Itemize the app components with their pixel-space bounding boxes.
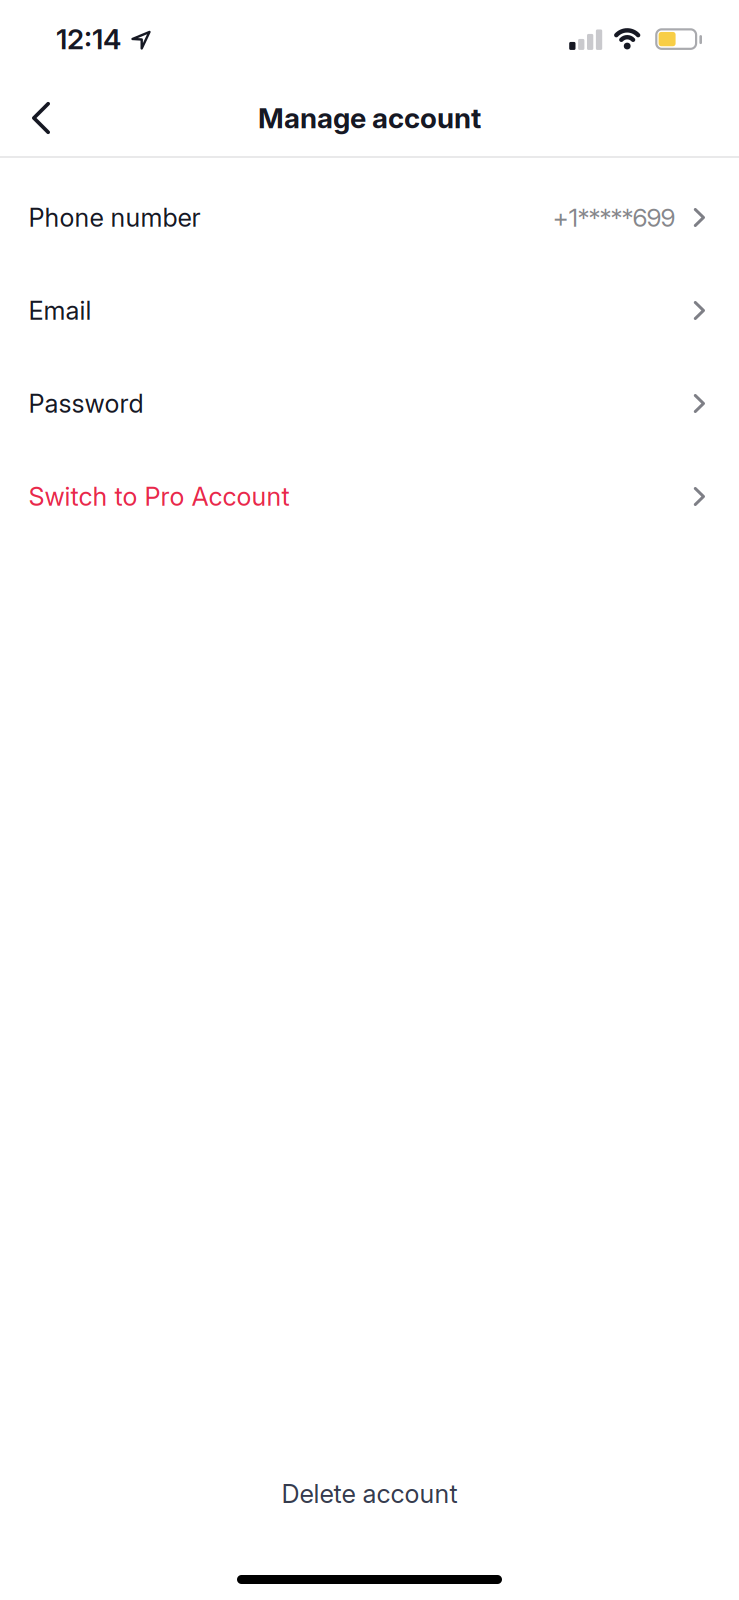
button[interactable]: Phone number [0, 171, 739, 264]
staticText: 12:14 [56, 22, 121, 56]
staticText: Switch to Pro Account [28, 481, 289, 512]
staticText: Password [28, 388, 143, 419]
button[interactable]: Switch to Pro Account [0, 450, 739, 543]
staticText: Email [28, 295, 91, 326]
button[interactable]: Back [0, 88, 72, 156]
button[interactable]: Delete account [257, 1466, 481, 1523]
staticText: Phone number [28, 202, 200, 233]
staticText: Manage account [258, 101, 481, 135]
staticText: Delete account [281, 1478, 457, 1509]
button[interactable]: Password [0, 357, 739, 450]
staticText: +1*****699 [553, 202, 675, 233]
button[interactable]: Email [0, 264, 739, 357]
